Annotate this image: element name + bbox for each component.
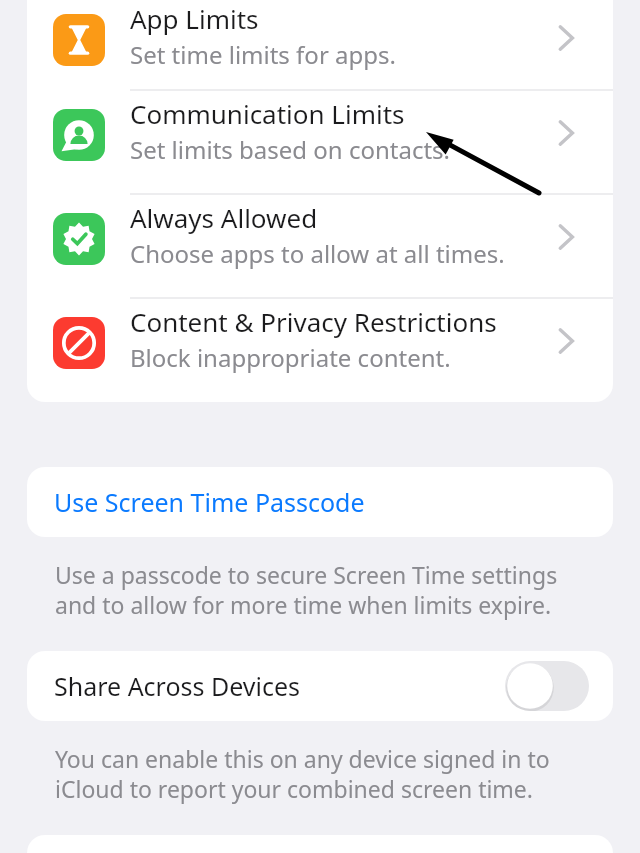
button[interactable]: Communication Limits xyxy=(27,91,613,195)
button[interactable]: App Limits xyxy=(27,0,613,91)
staticText: Share Across Devices xyxy=(54,669,505,703)
button[interactable]: Always Allowed xyxy=(27,195,613,299)
staticText: Set limits based on contacts. xyxy=(130,133,450,166)
staticText: You can enable this on any device signed… xyxy=(55,743,550,805)
button[interactable]: Content & Privacy Restrictions xyxy=(27,299,613,402)
staticText: Use a passcode to secure Screen Time set… xyxy=(55,559,558,621)
staticText: App Limits xyxy=(130,1,259,36)
staticText: Set time limits for apps. xyxy=(130,38,396,71)
button[interactable]: Use Screen Time Passcode xyxy=(27,467,613,537)
staticText: Choose apps to allow at all times. xyxy=(130,237,505,270)
staticText: Communication Limits xyxy=(130,96,405,131)
button[interactable]: Share Across Devices xyxy=(27,651,613,721)
staticText: Use Screen Time Passcode xyxy=(54,485,365,519)
staticText: Content & Privacy Restrictions xyxy=(130,304,497,339)
staticText: Block inappropriate content. xyxy=(130,341,451,374)
button[interactable]: Share Across Devices xyxy=(505,661,589,711)
staticText: Always Allowed xyxy=(130,200,318,235)
